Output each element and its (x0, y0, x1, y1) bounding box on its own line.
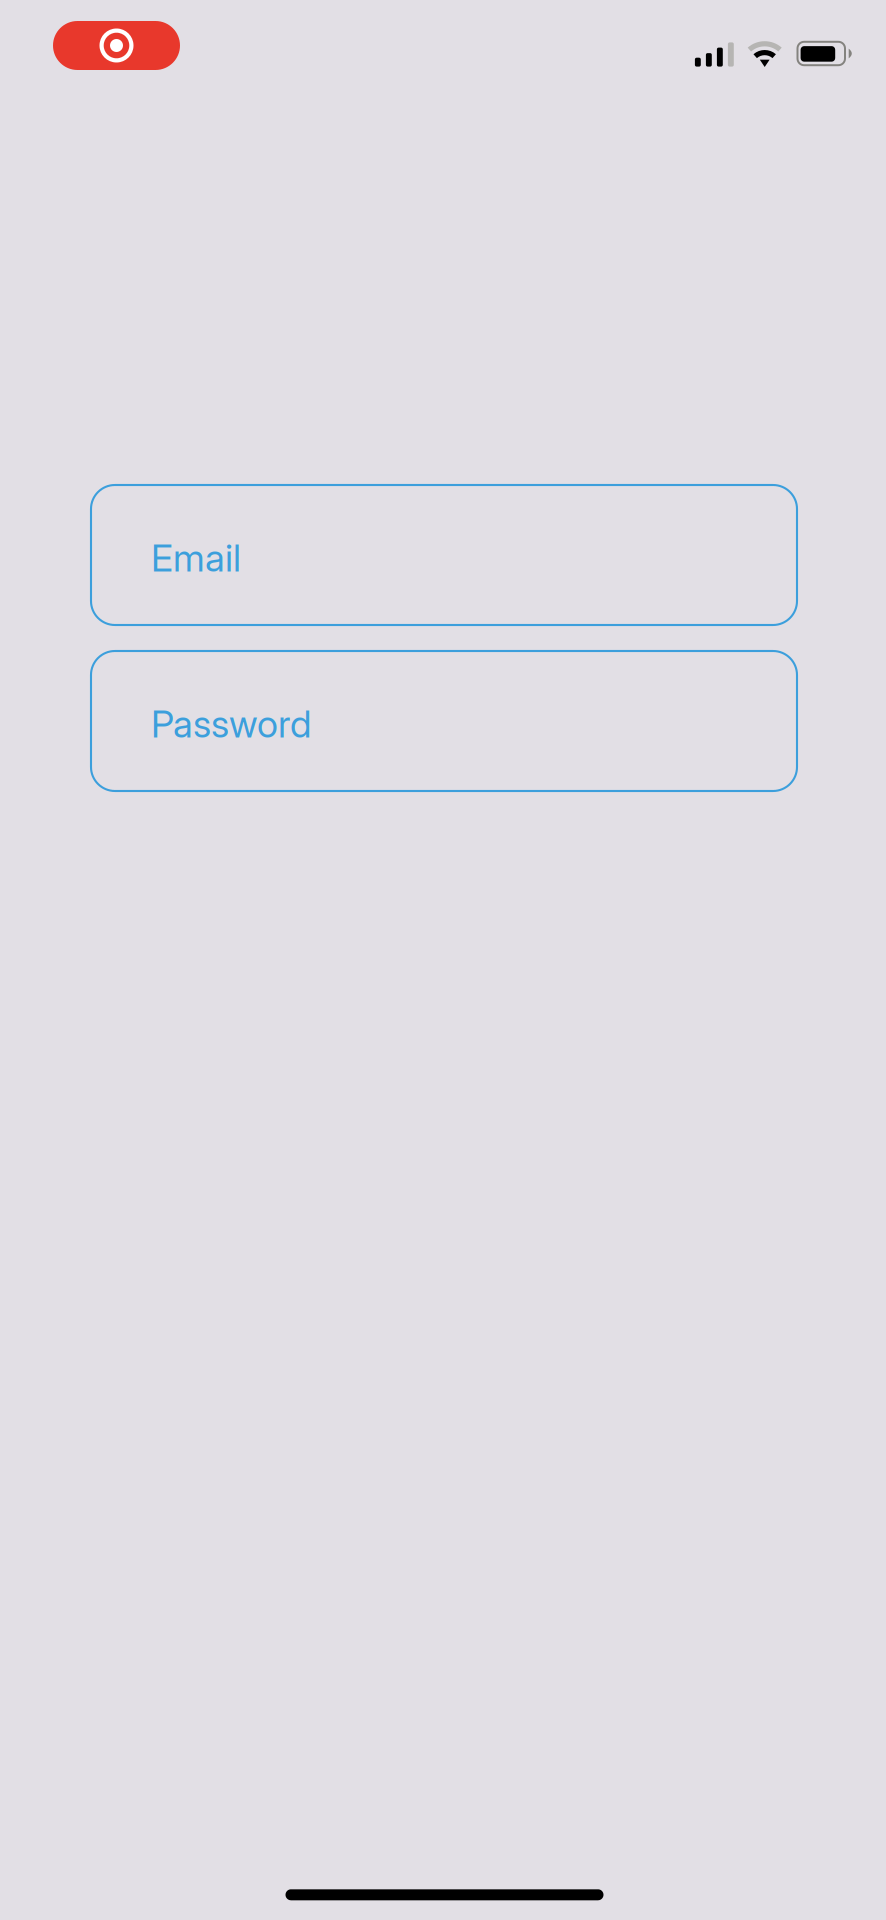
button[interactable]: Password (91, 651, 797, 791)
staticText: Email (151, 535, 241, 581)
staticText: Password (151, 701, 311, 747)
button[interactable]: Stop screen recording (53, 21, 180, 70)
button[interactable]: Email (91, 485, 797, 625)
